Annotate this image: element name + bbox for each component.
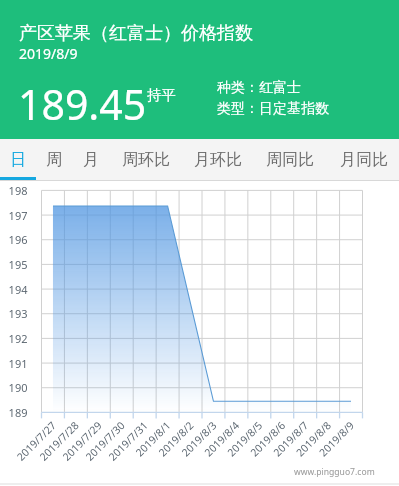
staticText: 月 (83, 150, 99, 170)
button[interactable]: 月同比 (329, 139, 399, 180)
staticText: 持平 (147, 86, 176, 104)
staticText: 月同比 (340, 150, 388, 170)
staticText: 189.45 (18, 76, 147, 132)
staticText: 月环比 (194, 150, 242, 170)
button[interactable]: 日 (0, 139, 37, 180)
button[interactable]: 周同比 (255, 139, 325, 180)
staticText: 日 (10, 150, 26, 170)
button[interactable]: 周环比 (111, 139, 181, 180)
staticText: 周同比 (266, 150, 314, 170)
staticText: 周环比 (122, 150, 170, 170)
button[interactable]: 周 (35, 139, 73, 180)
staticText: 类型：日定基指数 (217, 100, 329, 118)
staticText: 种类：红富士 (217, 79, 301, 97)
staticText: 产区苹果（红富士）价格指数 (19, 22, 253, 45)
staticText: 2019/8/9 (19, 44, 78, 63)
staticText: 周 (46, 150, 62, 170)
button[interactable]: 月环比 (183, 139, 253, 180)
button[interactable]: 月 (72, 139, 110, 180)
